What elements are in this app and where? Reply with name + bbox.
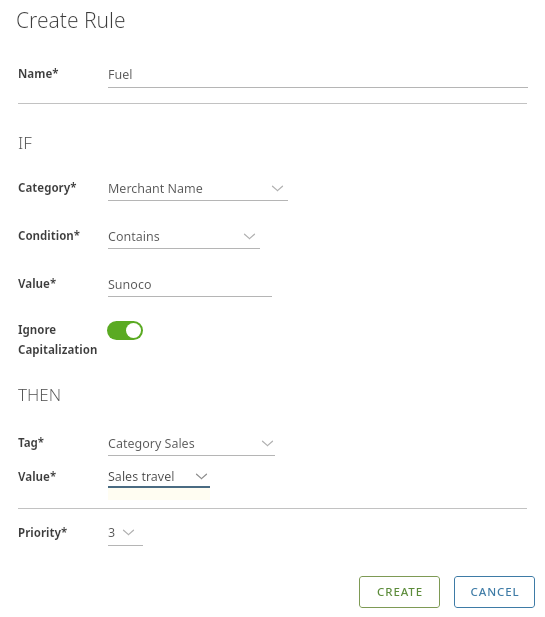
staticText: Sales travel xyxy=(108,468,175,485)
staticText: Tag* xyxy=(18,435,45,451)
staticText: Category* xyxy=(18,180,77,196)
staticText: Value* xyxy=(18,469,57,485)
staticText: Create Rule xyxy=(16,6,126,35)
staticText: Contains xyxy=(108,228,160,245)
staticText: CANCEL xyxy=(470,584,520,600)
staticText: IF xyxy=(18,131,32,154)
button[interactable]: Ignore xyxy=(0,0,545,36)
staticText: 3 xyxy=(108,524,116,541)
staticText: Fuel xyxy=(108,66,133,83)
staticText: CREATE xyxy=(377,584,423,600)
staticText: Ignore xyxy=(18,322,57,338)
staticText: Condition* xyxy=(18,228,81,244)
staticText: Capitalization xyxy=(18,342,98,358)
button[interactable]: Category* xyxy=(0,0,545,17)
button[interactable]: CREATE xyxy=(359,576,440,608)
button[interactable]: Value* xyxy=(0,0,545,17)
staticText: THEN xyxy=(18,383,62,406)
staticText: Priority* xyxy=(18,525,68,541)
staticText: Category Sales xyxy=(108,435,195,452)
button[interactable]: Name* xyxy=(0,0,545,17)
button[interactable]: Tag* xyxy=(0,0,545,17)
staticText: Name* xyxy=(18,66,59,82)
staticText: Merchant Name xyxy=(108,180,203,197)
button[interactable]: CANCEL xyxy=(454,576,535,608)
other: Ignore Capitalization toggle xyxy=(107,321,143,340)
button[interactable]: Condition* xyxy=(0,0,545,17)
staticText: Sunoco xyxy=(108,276,152,293)
button[interactable]: Value* xyxy=(0,0,545,17)
button[interactable]: Priority* xyxy=(0,0,545,17)
staticText: Value* xyxy=(18,276,57,292)
